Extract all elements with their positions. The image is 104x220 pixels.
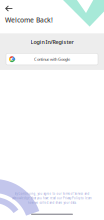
button[interactable]: Back	[0, 0, 17, 14]
staticText: how we collect and share your data.	[27, 201, 76, 205]
staticText: By Continuing, you agree to our Terms of…	[14, 192, 89, 195]
staticText: Login In/Register	[30, 38, 73, 45]
staticText: Continue with Google	[34, 56, 70, 62]
staticText: Welcome Back!	[5, 15, 53, 24]
button[interactable]: Continue with Google	[6, 53, 98, 65]
staticText: acknowledge that you have read our Priva…	[12, 196, 92, 200]
